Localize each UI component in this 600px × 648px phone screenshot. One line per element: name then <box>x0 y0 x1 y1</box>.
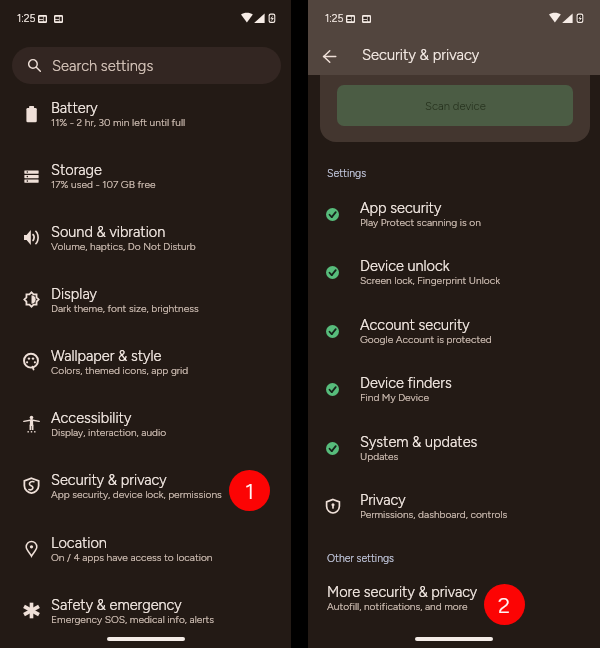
button[interactable]: More security & privacy <box>308 585 600 631</box>
staticText: Other settings <box>327 552 394 565</box>
staticText: 1 <box>245 478 255 504</box>
staticText: Volume, haptics, Do Not Disturb <box>51 240 196 252</box>
staticText: Display <box>51 285 97 302</box>
staticText: Play Protect scanning is on <box>360 216 481 228</box>
button[interactable]: Step 1 <box>229 470 270 511</box>
staticText: Settings <box>327 167 367 180</box>
button[interactable]: Display <box>0 287 291 339</box>
staticText: Safety & emergency <box>51 596 182 613</box>
staticText: Updates <box>360 450 399 462</box>
button[interactable]: Sound & vibration <box>0 225 291 277</box>
staticText: Privacy <box>360 491 406 508</box>
button[interactable]: Safety & emergency <box>0 598 291 648</box>
staticText: Device finders <box>360 374 452 391</box>
staticText: Security & privacy <box>362 46 480 64</box>
staticText: 1:25 <box>17 12 36 25</box>
button[interactable]: Privacy <box>308 493 600 543</box>
button[interactable]: Account security <box>308 318 600 368</box>
staticText: More security & privacy <box>327 583 478 600</box>
button[interactable]: Scan device <box>337 85 573 126</box>
staticText: System & updates <box>360 433 478 450</box>
button[interactable]: Wallpaper & style <box>0 349 291 401</box>
staticText: Find My Device <box>360 391 429 403</box>
button[interactable]: Step 2 <box>484 584 525 625</box>
staticText: Accessibility <box>51 409 132 426</box>
staticText: 11% - 2 hr, 30 min left until full <box>51 116 186 128</box>
staticText: 17% used - 107 GB free <box>51 178 156 190</box>
staticText: Autofill, notifications, and more <box>327 600 468 612</box>
staticText: Screen lock, Fingerprint Unlock <box>360 274 500 286</box>
staticText: App security, device lock, permissions <box>51 488 222 500</box>
staticText: Account security <box>360 316 470 333</box>
button[interactable]: Storage <box>0 163 291 215</box>
staticText: Sound & vibration <box>51 223 166 240</box>
staticText: Wallpaper & style <box>51 347 162 364</box>
button[interactable]: Device finders <box>308 376 600 426</box>
button[interactable]: Device unlock <box>308 259 600 309</box>
staticText: Location <box>51 534 107 551</box>
button[interactable]: System & updates <box>308 435 600 485</box>
staticText: Battery <box>51 99 98 116</box>
staticText: Search settings <box>52 57 154 75</box>
button[interactable]: Search settings <box>12 47 281 84</box>
button[interactable]: Battery <box>0 101 291 153</box>
staticText: Permissions, dashboard, controls <box>360 508 508 520</box>
button[interactable]: Back <box>311 38 347 74</box>
button[interactable]: Security & privacy <box>0 473 291 525</box>
staticText: On / 4 apps have access to location <box>51 551 213 563</box>
button[interactable]: Location <box>0 536 291 588</box>
staticText: App security <box>360 199 442 216</box>
staticText: Scan device <box>425 99 486 113</box>
staticText: 1:25 <box>325 12 344 25</box>
staticText: Security & privacy <box>51 471 167 488</box>
staticText: Colors, themed icons, app grid <box>51 364 189 376</box>
staticText: Storage <box>51 161 102 178</box>
staticText: 2 <box>498 592 511 618</box>
staticText: Dark theme, font size, brightness <box>51 302 199 314</box>
staticText: Device unlock <box>360 257 450 274</box>
staticText: Emergency SOS, medical info, alerts <box>51 613 215 625</box>
staticText: Display, interaction, audio <box>51 426 167 438</box>
button[interactable]: Accessibility <box>0 411 291 463</box>
button[interactable]: App security <box>308 201 600 251</box>
staticText: Google Account is protected <box>360 333 492 345</box>
